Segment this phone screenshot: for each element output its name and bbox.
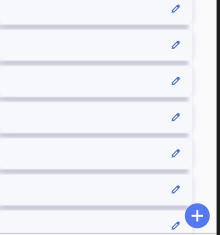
button[interactable]: Edit xyxy=(163,141,187,165)
button[interactable]: Edit xyxy=(163,33,187,57)
button[interactable]: Edit xyxy=(163,178,187,202)
button[interactable]: Add xyxy=(185,203,210,228)
button[interactable]: Edit xyxy=(163,214,187,235)
button[interactable]: Edit xyxy=(163,105,187,129)
button[interactable]: Edit xyxy=(163,0,187,21)
button[interactable]: Edit xyxy=(163,69,187,93)
